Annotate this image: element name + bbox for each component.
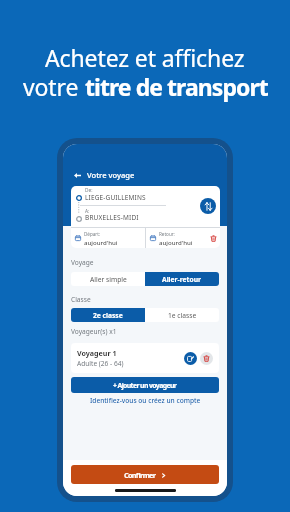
button[interactable]: Aller-retour (145, 272, 219, 286)
staticText: aujourd'hui (84, 238, 118, 246)
staticText: votre (23, 71, 85, 102)
staticText: BRUXELLES-MIDI (85, 213, 139, 222)
button[interactable]: Retour: (146, 228, 220, 248)
staticText: Adulte (26 - 64) (77, 359, 124, 368)
staticText: Confirmer (124, 470, 156, 480)
staticText: titre de transport (85, 71, 268, 102)
staticText: Voyage (71, 258, 94, 267)
button[interactable]: 2e classe (71, 308, 145, 322)
staticText: Départ: (84, 231, 101, 237)
staticText: 1e classe (168, 311, 197, 320)
staticText: + Ajouter un voyageur (113, 381, 177, 390)
staticText: Votre voyage (87, 170, 135, 180)
button[interactable]: Départ: (71, 228, 145, 248)
staticText: 2e classe (93, 311, 123, 320)
button[interactable]: Delete traveller (200, 352, 213, 365)
staticText: Classe (71, 295, 91, 304)
staticText: Aller simple (90, 275, 127, 284)
button[interactable]: Identifiez-vous ou créez un compte (90, 396, 201, 405)
staticText: A: (85, 208, 90, 215)
button[interactable]: Edit traveller (184, 352, 197, 365)
other: Back (72, 170, 82, 180)
button[interactable]: Back (63, 168, 143, 182)
staticText: LIEGE-GUILLEMINS (85, 193, 146, 202)
button[interactable]: Aller simple (71, 272, 145, 286)
staticText: aujourd'hui (159, 238, 193, 246)
button[interactable]: 1e classe (145, 308, 219, 322)
staticText: De: (85, 187, 93, 194)
staticText: Retour: (159, 231, 175, 237)
staticText: Voyageur 1 (77, 348, 117, 358)
button[interactable]: Confirmer (71, 465, 219, 484)
staticText: Achetez et affichez (45, 42, 245, 73)
button[interactable]: + Ajouter un voyageur (71, 377, 219, 393)
staticText: Aller-retour (162, 275, 202, 284)
button[interactable]: Swap origin and destination (200, 198, 216, 214)
staticText: Voyageur(s) x1 (71, 327, 117, 336)
button[interactable]: Remove return trip (210, 235, 217, 242)
